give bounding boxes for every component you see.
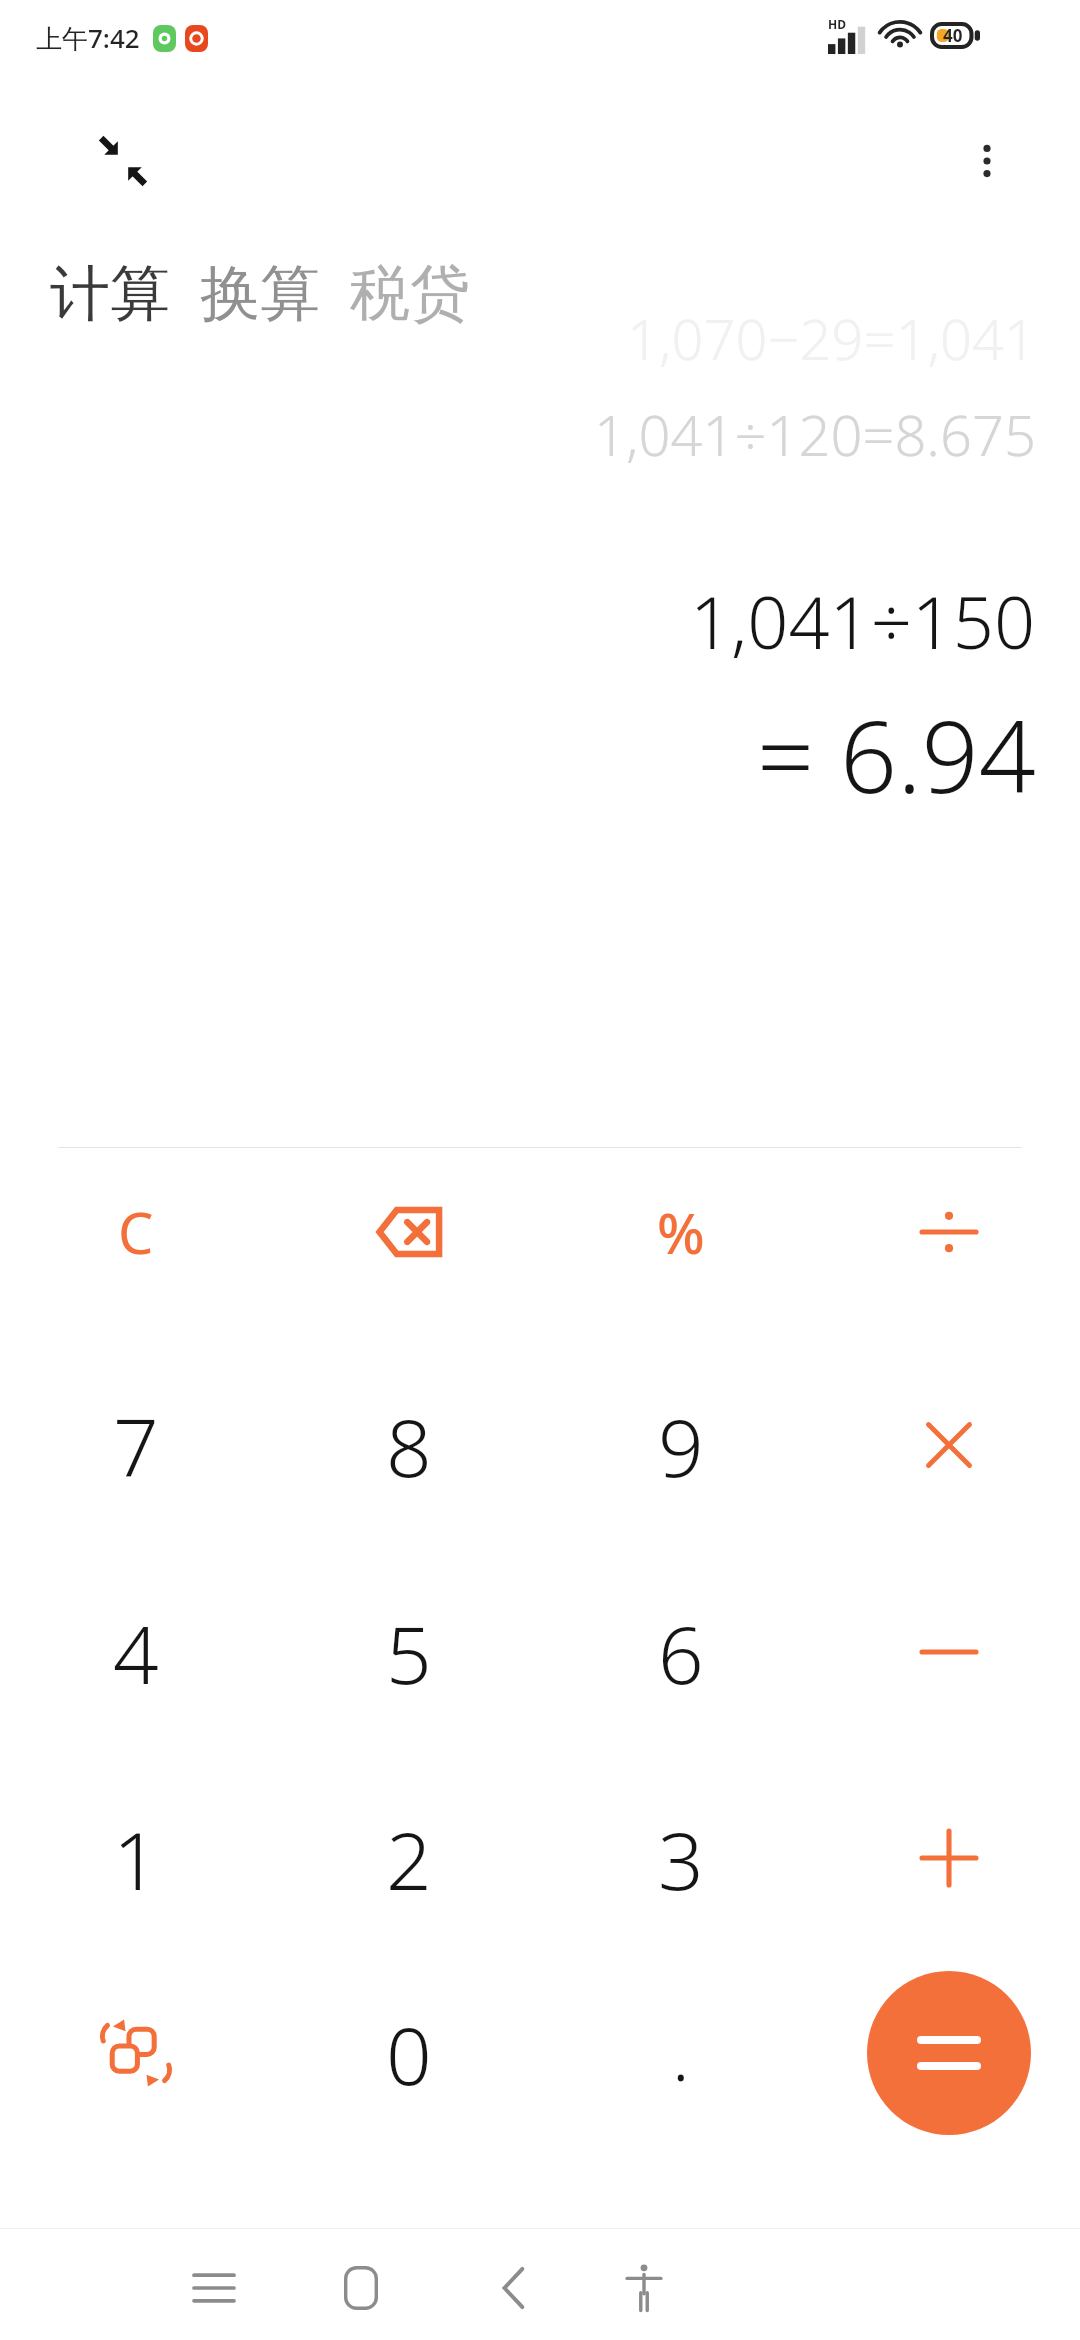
button[interactable]: 计算 <box>44 248 176 340</box>
staticText: HD <box>828 16 846 32</box>
button[interactable]: 8 <box>319 1355 499 1535</box>
staticText: 1,041÷120=8.675 <box>594 396 1036 472</box>
button[interactable]: 3 <box>591 1768 771 1948</box>
button[interactable]: Back <box>458 2236 570 2340</box>
staticText: 1 <box>113 1804 159 1913</box>
staticText: 7 <box>113 1391 159 1500</box>
staticText: 3 <box>658 1804 704 1913</box>
staticText: = 6.94 <box>757 686 1036 822</box>
staticText: 6 <box>658 1598 704 1707</box>
button[interactable]: Multiply <box>859 1355 1039 1535</box>
staticText: . <box>672 2004 690 2102</box>
staticText: C <box>118 1194 154 1270</box>
button[interactable]: Minus <box>859 1562 1039 1742</box>
button[interactable]: 4 <box>46 1562 226 1742</box>
button[interactable]: Accessibility <box>588 2236 700 2340</box>
button[interactable]: . <box>591 1963 771 2143</box>
staticText: 计算 <box>50 256 170 332</box>
staticText: 1,070−29=1,041 <box>627 300 1036 376</box>
button[interactable]: 7 <box>46 1355 226 1535</box>
button[interactable]: 2 <box>319 1768 499 1948</box>
button[interactable]: 6 <box>591 1562 771 1742</box>
button[interactable]: Plus <box>859 1768 1039 1948</box>
staticText: 税贷 <box>350 256 470 332</box>
button[interactable]: Collapse <box>84 122 162 200</box>
button[interactable]: 1 <box>46 1768 226 1948</box>
button[interactable]: Clear <box>46 1142 226 1322</box>
button[interactable]: Divide <box>859 1142 1039 1322</box>
button[interactable]: Equals <box>867 1971 1031 2135</box>
button[interactable]: Recent apps <box>158 2236 270 2340</box>
staticText: 1,041÷150 <box>690 572 1036 670</box>
staticText: 9 <box>658 1391 704 1500</box>
staticText: 2 <box>386 1804 432 1913</box>
staticText: 上午7:42 <box>36 20 140 56</box>
staticText: 5 <box>386 1598 432 1707</box>
button[interactable]: Home <box>305 2236 417 2340</box>
staticText: 40 <box>943 24 963 47</box>
button[interactable]: Backspace <box>319 1142 499 1322</box>
button[interactable]: 0 <box>319 1963 499 2143</box>
staticText: % <box>657 1194 705 1270</box>
button[interactable]: Convert units <box>46 1963 226 2143</box>
staticText: 8 <box>386 1391 432 1500</box>
button[interactable]: 9 <box>591 1355 771 1535</box>
button[interactable]: 税贷 <box>344 248 476 340</box>
button[interactable]: 换算 <box>194 248 326 340</box>
button[interactable]: Percent <box>591 1142 771 1322</box>
staticText: 换算 <box>200 256 320 332</box>
button[interactable]: More options <box>948 122 1026 200</box>
button[interactable]: 5 <box>319 1562 499 1742</box>
staticText: 0 <box>386 1999 432 2108</box>
staticText: 4 <box>113 1598 159 1707</box>
